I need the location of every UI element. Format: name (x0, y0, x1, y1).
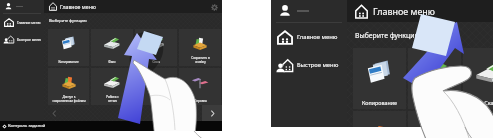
button[interactable]: Главное меню (0, 14, 44, 31)
staticText: Главное меню (17, 20, 41, 25)
staticText: Главное меню (373, 5, 435, 17)
button[interactable]: Копирование (353, 48, 406, 109)
staticText: Скан (484, 99, 493, 106)
staticText: Быстрое меню (17, 37, 41, 42)
button[interactable]: Доступ к сохраненным файлам (48, 68, 89, 105)
button[interactable]: Скан (463, 48, 493, 109)
button[interactable]: Next page (202, 105, 222, 121)
button[interactable]: Settings (209, 2, 219, 12)
staticText: Выберите функцию (355, 31, 420, 40)
button[interactable]: Работа с сетью (408, 111, 461, 127)
button[interactable]: Контроль заданий (0, 121, 222, 131)
button[interactable]: User (271, 0, 347, 22)
staticText: Главное меню (60, 3, 96, 10)
button[interactable]: Факс (408, 48, 461, 109)
staticText: Работа с сетью (106, 95, 119, 103)
staticText: Главное меню (297, 33, 338, 41)
button[interactable]: Веб (463, 111, 493, 127)
staticText: Копирование (58, 60, 79, 64)
staticText: Сохранить в ячейку (191, 56, 210, 64)
staticText: Доступ к сохраненным файлам (52, 95, 86, 103)
button[interactable]: Previous page (44, 105, 64, 121)
button[interactable]: User (0, 0, 44, 13)
button[interactable]: Быстрое меню (0, 31, 44, 48)
staticText: Выберите функцию (49, 18, 87, 23)
button[interactable]: Факс (91, 29, 133, 66)
button[interactable]: Справка (179, 68, 221, 105)
button[interactable]: Копирование (48, 29, 89, 66)
staticText: Факс (108, 60, 116, 64)
button[interactable]: Сохранить в ячейку (179, 29, 221, 66)
button[interactable]: Быстрое меню (271, 51, 347, 79)
staticText: Справка (194, 99, 207, 103)
button[interactable]: Скан (135, 29, 177, 66)
staticText: Скан (152, 60, 160, 64)
button[interactable]: Веб (135, 68, 177, 105)
staticText: Копирование (362, 99, 397, 106)
button[interactable]: Работа с сетью (91, 68, 133, 105)
button[interactable]: Доступ к сохраненным файлам (353, 111, 406, 127)
staticText: Контроль заданий (8, 123, 46, 129)
button[interactable]: Главное меню (271, 23, 347, 51)
staticText: Быстрое меню (297, 61, 339, 69)
